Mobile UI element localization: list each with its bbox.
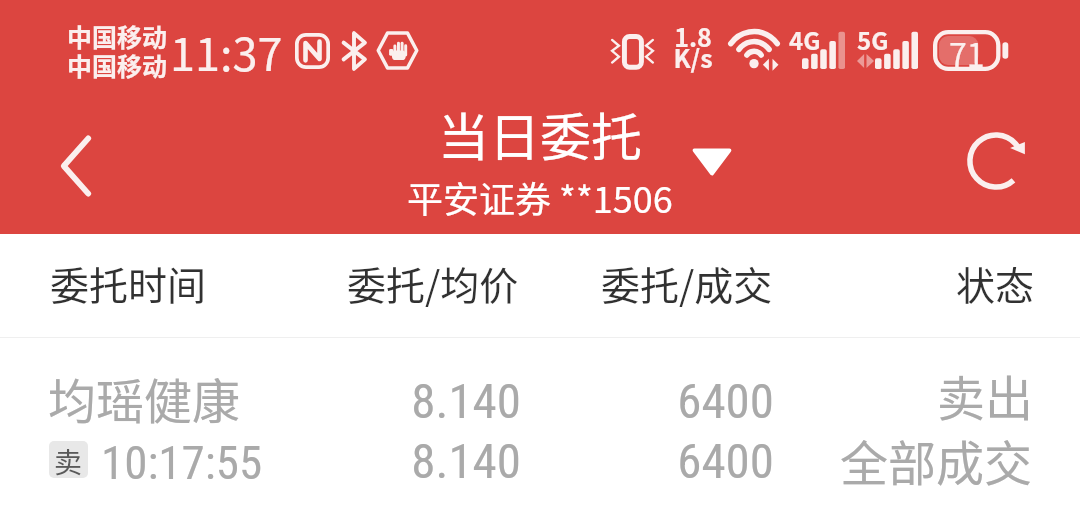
- staticText: 状态: [956, 255, 1035, 311]
- button[interactable]: Switch account: [680, 130, 744, 192]
- staticText: 4G: [789, 22, 821, 57]
- staticText: 6400: [354, 373, 774, 430]
- staticText: 8.140: [101, 373, 521, 430]
- staticText: 6400: [354, 433, 774, 490]
- staticText: 委托/成交: [601, 255, 773, 311]
- button[interactable]: Refresh: [935, 96, 1080, 234]
- staticText: 全部成交: [612, 425, 1032, 495]
- staticText: 5G: [857, 22, 889, 57]
- staticText: 平安证券 **1506: [407, 171, 673, 223]
- staticText: 71: [949, 30, 985, 71]
- button[interactable]: 均瑶健康: [0, 338, 1080, 517]
- staticText: 8.140: [101, 433, 521, 490]
- staticText: 当日委托: [438, 97, 643, 171]
- staticText: 中国移动: [67, 47, 167, 83]
- staticText: 均瑶健康: [48, 363, 241, 433]
- staticText: 11:37: [170, 19, 283, 84]
- staticText: 卖: [54, 441, 83, 478]
- staticText: K/s: [673, 39, 713, 75]
- button[interactable]: 当日委托: [240, 96, 840, 234]
- staticText: 1.8: [674, 18, 712, 54]
- staticText: 卖出: [613, 360, 1033, 430]
- staticText: 委托时间: [50, 255, 207, 311]
- button[interactable]: Back: [0, 96, 160, 234]
- staticText: 中国移动: [67, 18, 167, 54]
- staticText: 10:17:55: [101, 435, 263, 490]
- staticText: 委托/均价: [347, 255, 519, 311]
